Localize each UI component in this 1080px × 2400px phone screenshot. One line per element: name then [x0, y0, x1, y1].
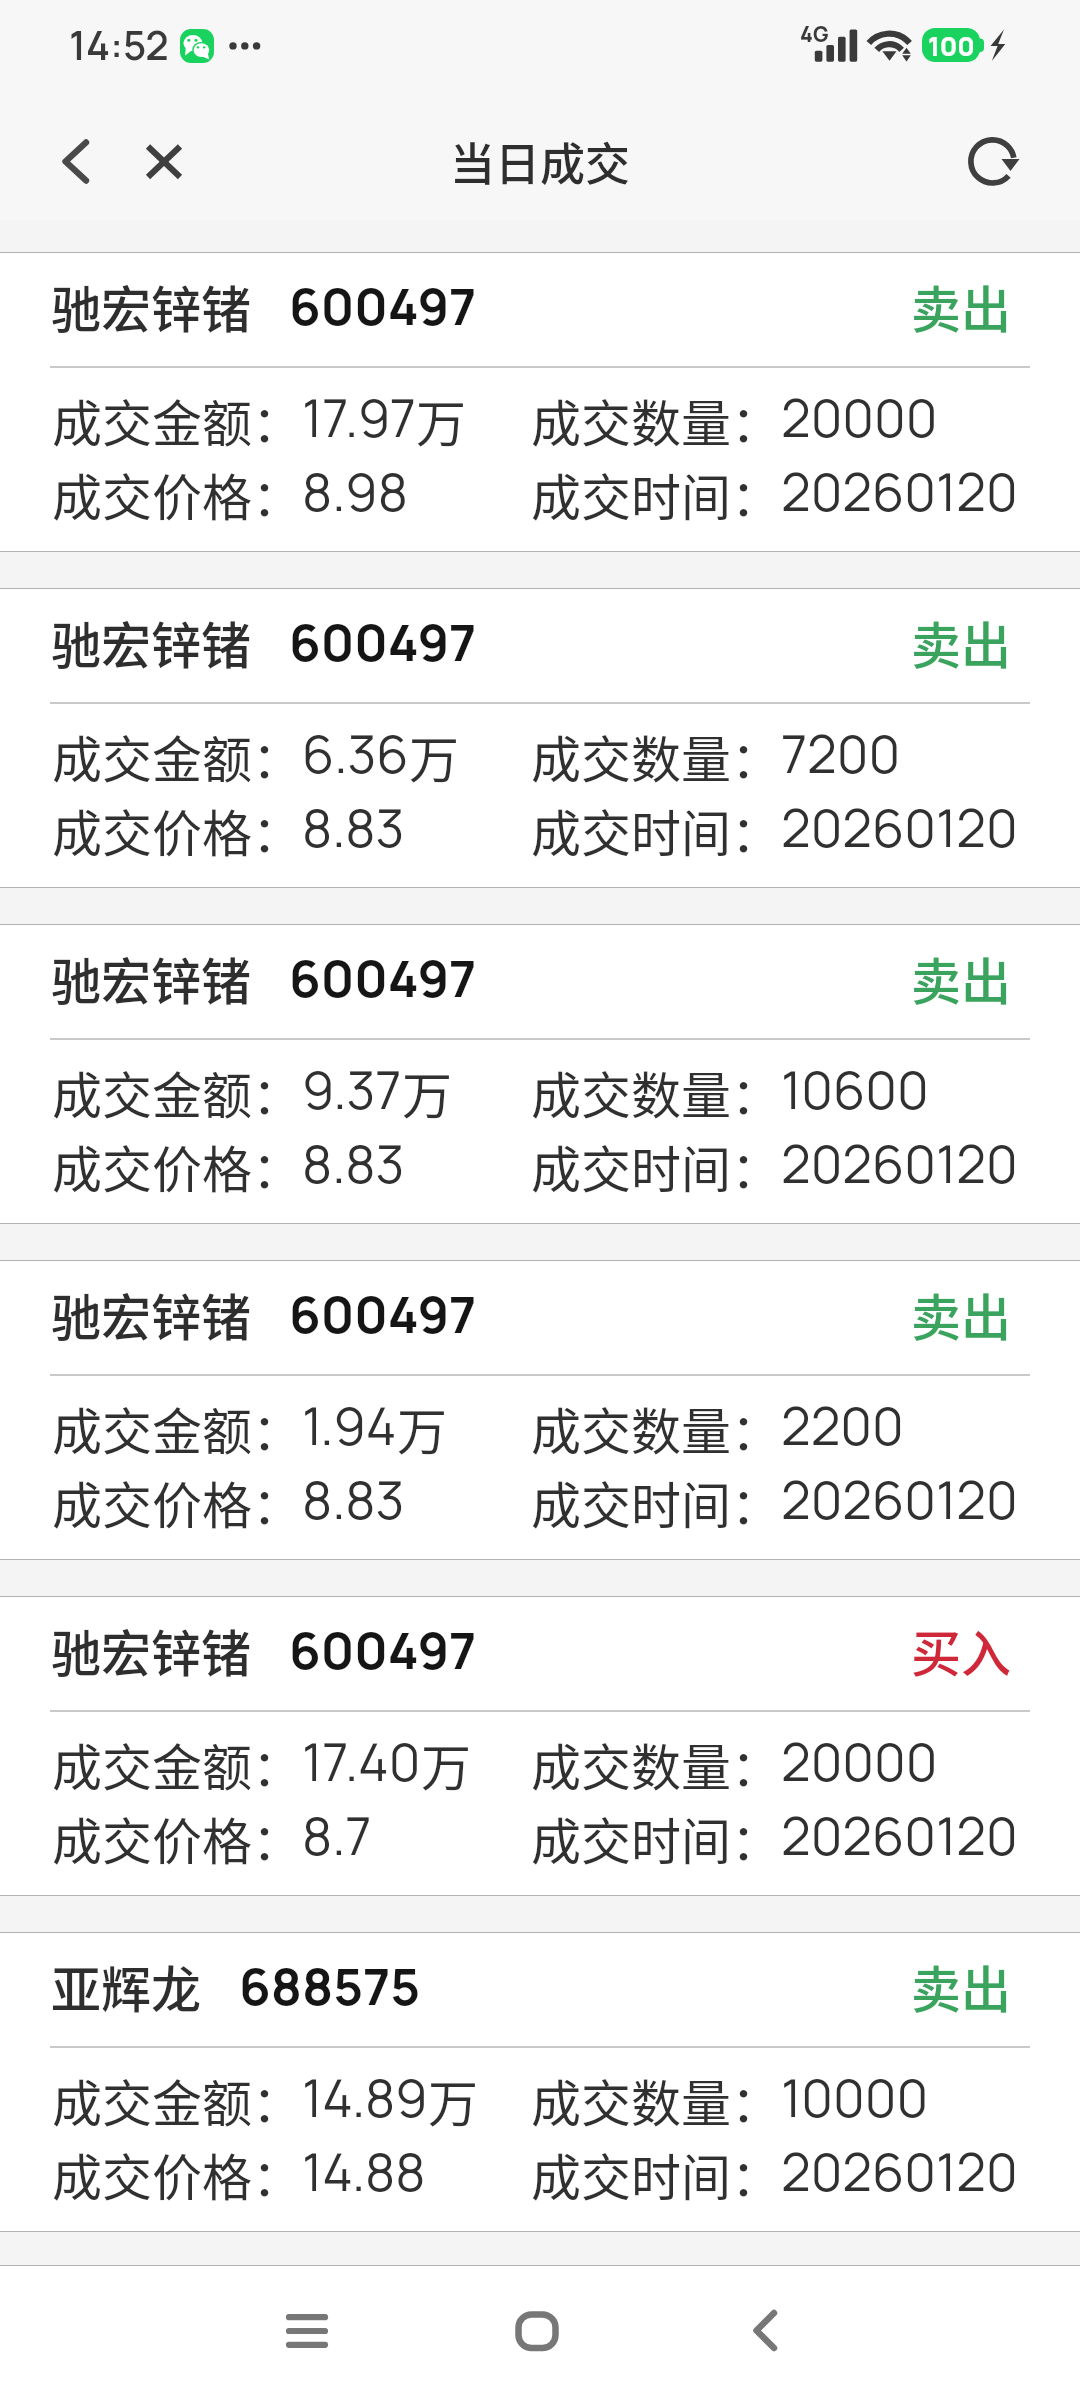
staticText: 万: [421, 1728, 471, 1800]
staticText: 2200: [781, 1390, 904, 1461]
staticText: 成交价格：: [52, 2138, 302, 2210]
staticText: 驰宏锌锗: [51, 1614, 251, 1686]
staticText: 9.37: [302, 1054, 402, 1125]
button[interactable]: 驰宏锌锗: [0, 589, 1080, 887]
staticText: 20260120: [781, 1128, 1018, 1199]
staticText: 20260120: [781, 1800, 1018, 1871]
staticText: 14:52: [69, 17, 169, 72]
button[interactable]: Back: [719, 2285, 809, 2375]
staticText: 驰宏锌锗: [51, 942, 251, 1014]
staticText: 17.40: [302, 1726, 421, 1797]
staticText: 6.36: [302, 718, 409, 789]
staticText: 20260120: [781, 2136, 1018, 2207]
staticText: 成交价格：: [52, 794, 302, 866]
staticText: 成交时间：: [531, 1802, 781, 1874]
staticText: 7200: [781, 718, 901, 789]
staticText: 买入: [911, 1614, 1011, 1686]
button[interactable]: 亚辉龙: [0, 1933, 1080, 2231]
staticText: 8.83: [302, 1464, 405, 1535]
staticText: 688575: [239, 1951, 421, 2021]
staticText: 成交金额：: [52, 1728, 302, 1800]
staticText: 成交价格：: [52, 1466, 302, 1538]
staticText: 成交金额：: [52, 2064, 302, 2136]
staticText: 卖出: [911, 606, 1011, 678]
staticText: 14.89: [302, 2062, 428, 2133]
staticText: 当日成交: [450, 129, 631, 194]
button[interactable]: Refresh: [956, 110, 1056, 220]
staticText: 20260120: [781, 1464, 1018, 1535]
other: WeChat notification: [180, 29, 214, 63]
staticText: 万: [416, 384, 466, 456]
button[interactable]: 驰宏锌锗: [0, 925, 1080, 1223]
staticText: 20260120: [781, 792, 1018, 863]
staticText: 8.98: [302, 456, 408, 527]
staticText: 驰宏锌锗: [51, 1278, 251, 1350]
staticText: 成交金额：: [52, 720, 302, 792]
staticText: 8.83: [302, 792, 405, 863]
staticText: 成交数量：: [531, 1728, 781, 1800]
staticText: 卖出: [911, 1278, 1011, 1350]
staticText: 卖出: [911, 1950, 1011, 2022]
staticText: 600497: [289, 943, 477, 1013]
staticText: 成交时间：: [531, 1466, 781, 1538]
staticText: 亚辉龙: [51, 1950, 201, 2022]
staticText: 成交数量：: [531, 720, 781, 792]
staticText: 14.88: [302, 2136, 426, 2207]
staticText: 万: [428, 2064, 478, 2136]
staticText: 驰宏锌锗: [51, 270, 251, 342]
staticText: 成交时间：: [531, 458, 781, 530]
button[interactable]: 驰宏锌锗: [0, 1261, 1080, 1559]
button[interactable]: 驰宏锌锗: [0, 253, 1080, 551]
staticText: 成交价格：: [52, 458, 302, 530]
staticText: 4G: [800, 20, 829, 49]
staticText: 成交数量：: [531, 1392, 781, 1464]
staticText: 成交数量：: [531, 384, 781, 456]
staticText: 成交价格：: [52, 1802, 302, 1874]
button[interactable]: Close: [126, 110, 202, 220]
staticText: 万: [402, 1056, 452, 1128]
staticText: 10600: [781, 1054, 929, 1125]
staticText: 600497: [289, 1279, 477, 1349]
staticText: 成交时间：: [531, 1130, 781, 1202]
staticText: 1.94: [302, 1390, 397, 1461]
staticText: 成交金额：: [52, 384, 302, 456]
staticText: 600497: [289, 271, 477, 341]
staticText: 20000: [781, 382, 938, 453]
staticText: 600497: [289, 607, 477, 677]
staticText: 成交数量：: [531, 2064, 781, 2136]
staticText: 万: [409, 720, 459, 792]
button[interactable]: Recent apps: [262, 2285, 352, 2375]
staticText: 驰宏锌锗: [51, 606, 251, 678]
staticText: 17.97: [302, 382, 416, 453]
staticText: 成交金额：: [52, 1056, 302, 1128]
staticText: 成交时间：: [531, 2138, 781, 2210]
staticText: 100: [928, 28, 975, 62]
staticText: 成交价格：: [52, 1130, 302, 1202]
staticText: 成交数量：: [531, 1056, 781, 1128]
staticText: 10000: [781, 2062, 929, 2133]
staticText: 600497: [289, 1615, 477, 1685]
staticText: 8.83: [302, 1128, 405, 1199]
button[interactable]: Back: [36, 110, 114, 220]
staticText: 卖出: [911, 270, 1011, 342]
button[interactable]: 驰宏锌锗: [0, 1597, 1080, 1895]
staticText: 20260120: [781, 456, 1018, 527]
button[interactable]: Home: [492, 2285, 582, 2375]
staticText: 8.7: [302, 1800, 372, 1871]
staticText: 20000: [781, 1726, 938, 1797]
staticText: 万: [397, 1392, 447, 1464]
staticText: 成交时间：: [531, 794, 781, 866]
staticText: 卖出: [911, 942, 1011, 1014]
staticText: 成交金额：: [52, 1392, 302, 1464]
